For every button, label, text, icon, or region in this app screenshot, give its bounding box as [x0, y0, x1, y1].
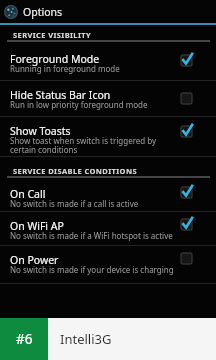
staticText: SERVICE VISIBILITY [13, 30, 92, 40]
staticText: Intelli3G [60, 330, 112, 348]
staticText: On Power [10, 253, 59, 267]
staticText: On WiFi AP [10, 219, 64, 233]
button[interactable] [0, 81, 216, 117]
staticText: Show toast when switch is triggered by [10, 135, 157, 146]
button[interactable] [0, 180, 216, 212]
staticText: Run in low priority foreground mode [10, 99, 148, 110]
button[interactable] [0, 45, 216, 81]
staticText: certain conditions [10, 144, 78, 155]
staticText: SERVICE DISABLE CONDITIONS [13, 166, 137, 176]
staticText: Show Toasts [10, 124, 71, 138]
staticText: Options [23, 5, 63, 19]
button[interactable] [0, 212, 216, 246]
staticText: No switch is made if a WiFi hotspot is a… [10, 230, 173, 241]
button[interactable]: Options [0, 0, 216, 23]
staticText: #6 [16, 330, 33, 348]
button[interactable]: #6 [0, 318, 216, 360]
staticText: On Call [10, 187, 46, 201]
staticText: No switch is made if a call is active [10, 198, 139, 209]
staticText: Foreground Mode [10, 52, 100, 66]
staticText: Running in foreground mode [10, 63, 120, 74]
staticText: No switch is made if your device is char… [10, 264, 174, 275]
staticText: Hide Status Bar Icon [10, 88, 111, 102]
button[interactable] [0, 246, 216, 284]
button[interactable] [0, 117, 216, 157]
